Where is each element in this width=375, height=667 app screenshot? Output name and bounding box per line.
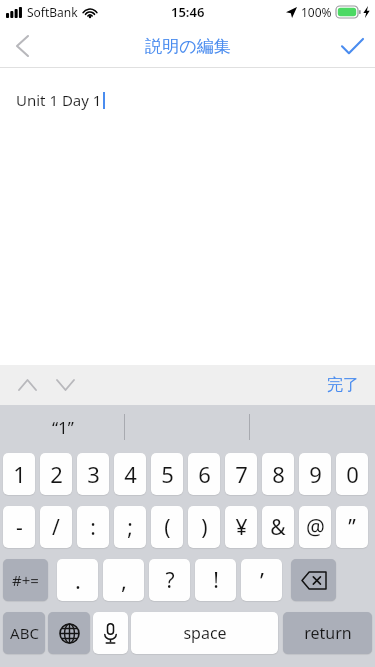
staticText: ’ [260,565,264,595]
staticText: , [121,565,127,595]
staticText: SoftBank [27,4,78,20]
button[interactable]: , [103,559,144,601]
button[interactable]: - [3,506,35,548]
staticText: ” [348,513,356,542]
staticText: #+= [12,570,39,590]
staticText: @ [306,513,325,542]
button[interactable]: 3 [77,453,109,495]
button[interactable]: Next field [46,366,84,404]
button[interactable]: #+= [3,559,48,601]
button[interactable]: Switch keyboard language [48,612,90,654]
button[interactable]: ! [195,559,236,601]
staticText: 0 [346,459,359,489]
button[interactable]: Voice input [93,612,128,654]
button[interactable]: 8 [262,453,294,495]
staticText: ( [164,513,171,542]
button[interactable]: 0 [336,453,368,495]
button[interactable]: Previous field [8,366,46,404]
staticText: ! [213,566,219,595]
button[interactable]: 2 [40,453,72,495]
button[interactable]: : [77,506,109,548]
button[interactable]: ( [151,506,183,548]
button[interactable]: 4 [114,453,146,495]
button[interactable]: Unit 1 Day 1 [0,68,375,365]
button[interactable]: ¥ [225,506,257,548]
staticText: ? [165,566,175,595]
button[interactable]: & [262,506,294,548]
staticText: : [90,513,96,542]
staticText: ; [127,513,133,542]
staticText: 7 [235,459,248,489]
button[interactable]: Backspace [291,559,336,601]
button[interactable]: . [57,559,98,601]
button[interactable]: 1 [3,453,35,495]
button[interactable]: ” [336,506,368,548]
button[interactable]: @ [299,506,331,548]
button[interactable]: 7 [225,453,257,495]
button[interactable]: 6 [188,453,220,495]
button[interactable]: Done, save description [329,24,375,68]
staticText: 5 [161,459,174,489]
button[interactable]: ; [114,506,146,548]
staticText: 4 [124,459,137,489]
staticText: 8 [272,459,285,489]
staticText: 3 [87,459,100,489]
staticText: . [75,565,81,595]
staticText: “1” [52,416,74,439]
staticText: 完了 [327,375,359,395]
staticText: 1 [13,459,26,489]
staticText: & [270,513,286,542]
staticText: Unit 1 Day 1 [16,90,102,110]
staticText: 説明の編集 [145,36,231,57]
staticText: ABC [10,623,39,643]
button[interactable]: return [283,612,372,654]
staticText: / [52,513,60,542]
button[interactable]: 9 [299,453,331,495]
staticText: 2 [50,459,63,489]
staticText: ) [201,513,208,542]
button[interactable]: “1” [0,405,125,449]
staticText: 9 [309,459,322,489]
staticText: 6 [198,459,211,489]
button[interactable]: ’ [241,559,282,601]
staticText: space [183,622,227,644]
button[interactable]: ABC [3,612,45,654]
button[interactable]: ? [149,559,190,601]
button[interactable]: space [131,612,278,654]
button[interactable]: ) [188,506,220,548]
button[interactable]: 完了 [319,367,367,403]
button[interactable]: / [40,506,72,548]
button[interactable]: 5 [151,453,183,495]
staticText: 100% [301,4,332,20]
staticText: - [16,513,23,542]
staticText: 15:46 [171,3,205,21]
staticText: ¥ [235,513,248,542]
button[interactable]: Back [0,24,44,68]
staticText: return [304,622,352,644]
